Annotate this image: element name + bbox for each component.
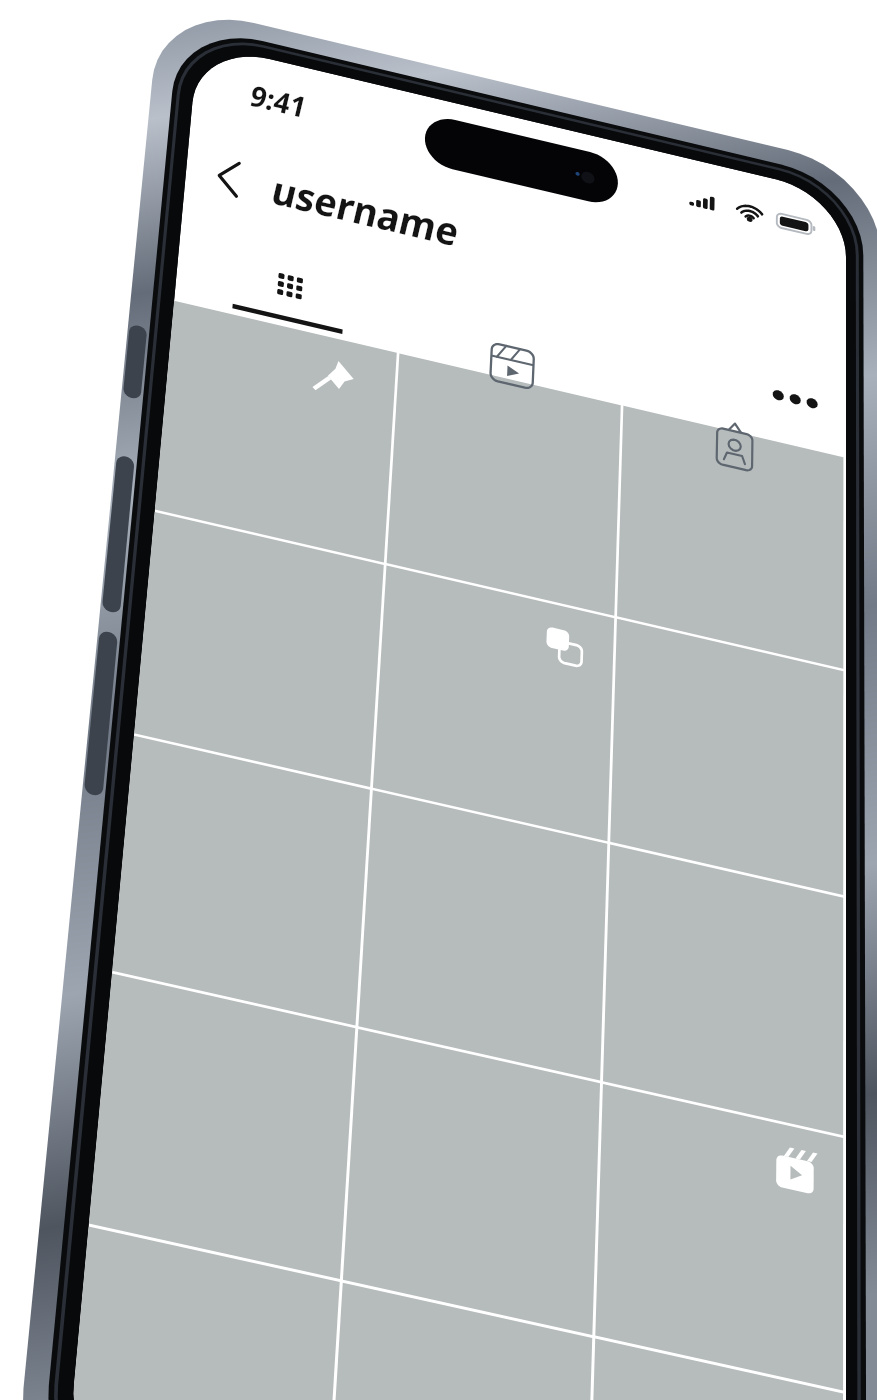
button[interactable]: Tagged [620, 382, 810, 487]
button[interactable]: Photo 7 [88, 890, 333, 1130]
button[interactable]: Photo 6 [593, 706, 838, 946]
button[interactable]: Photo 4 [88, 640, 333, 880]
button[interactable]: Photo 11 [339, 1173, 584, 1400]
button[interactable]: Posts grid [140, 285, 340, 390]
button[interactable]: Photo 2 [339, 433, 584, 673]
button[interactable]: Photo 8 [339, 923, 584, 1163]
button[interactable]: Photo 12 [593, 1206, 838, 1400]
button[interactable]: Photo 5 [339, 673, 584, 913]
button[interactable]: Reels [378, 330, 568, 435]
button[interactable]: Photo 3 [593, 466, 838, 706]
button[interactable]: Back [100, 175, 170, 250]
button[interactable]: Photo 9 [593, 956, 838, 1196]
button[interactable]: Photo 10 [88, 1140, 333, 1380]
button[interactable] [168, 200, 368, 280]
button[interactable]: Photo 1 [88, 400, 333, 640]
